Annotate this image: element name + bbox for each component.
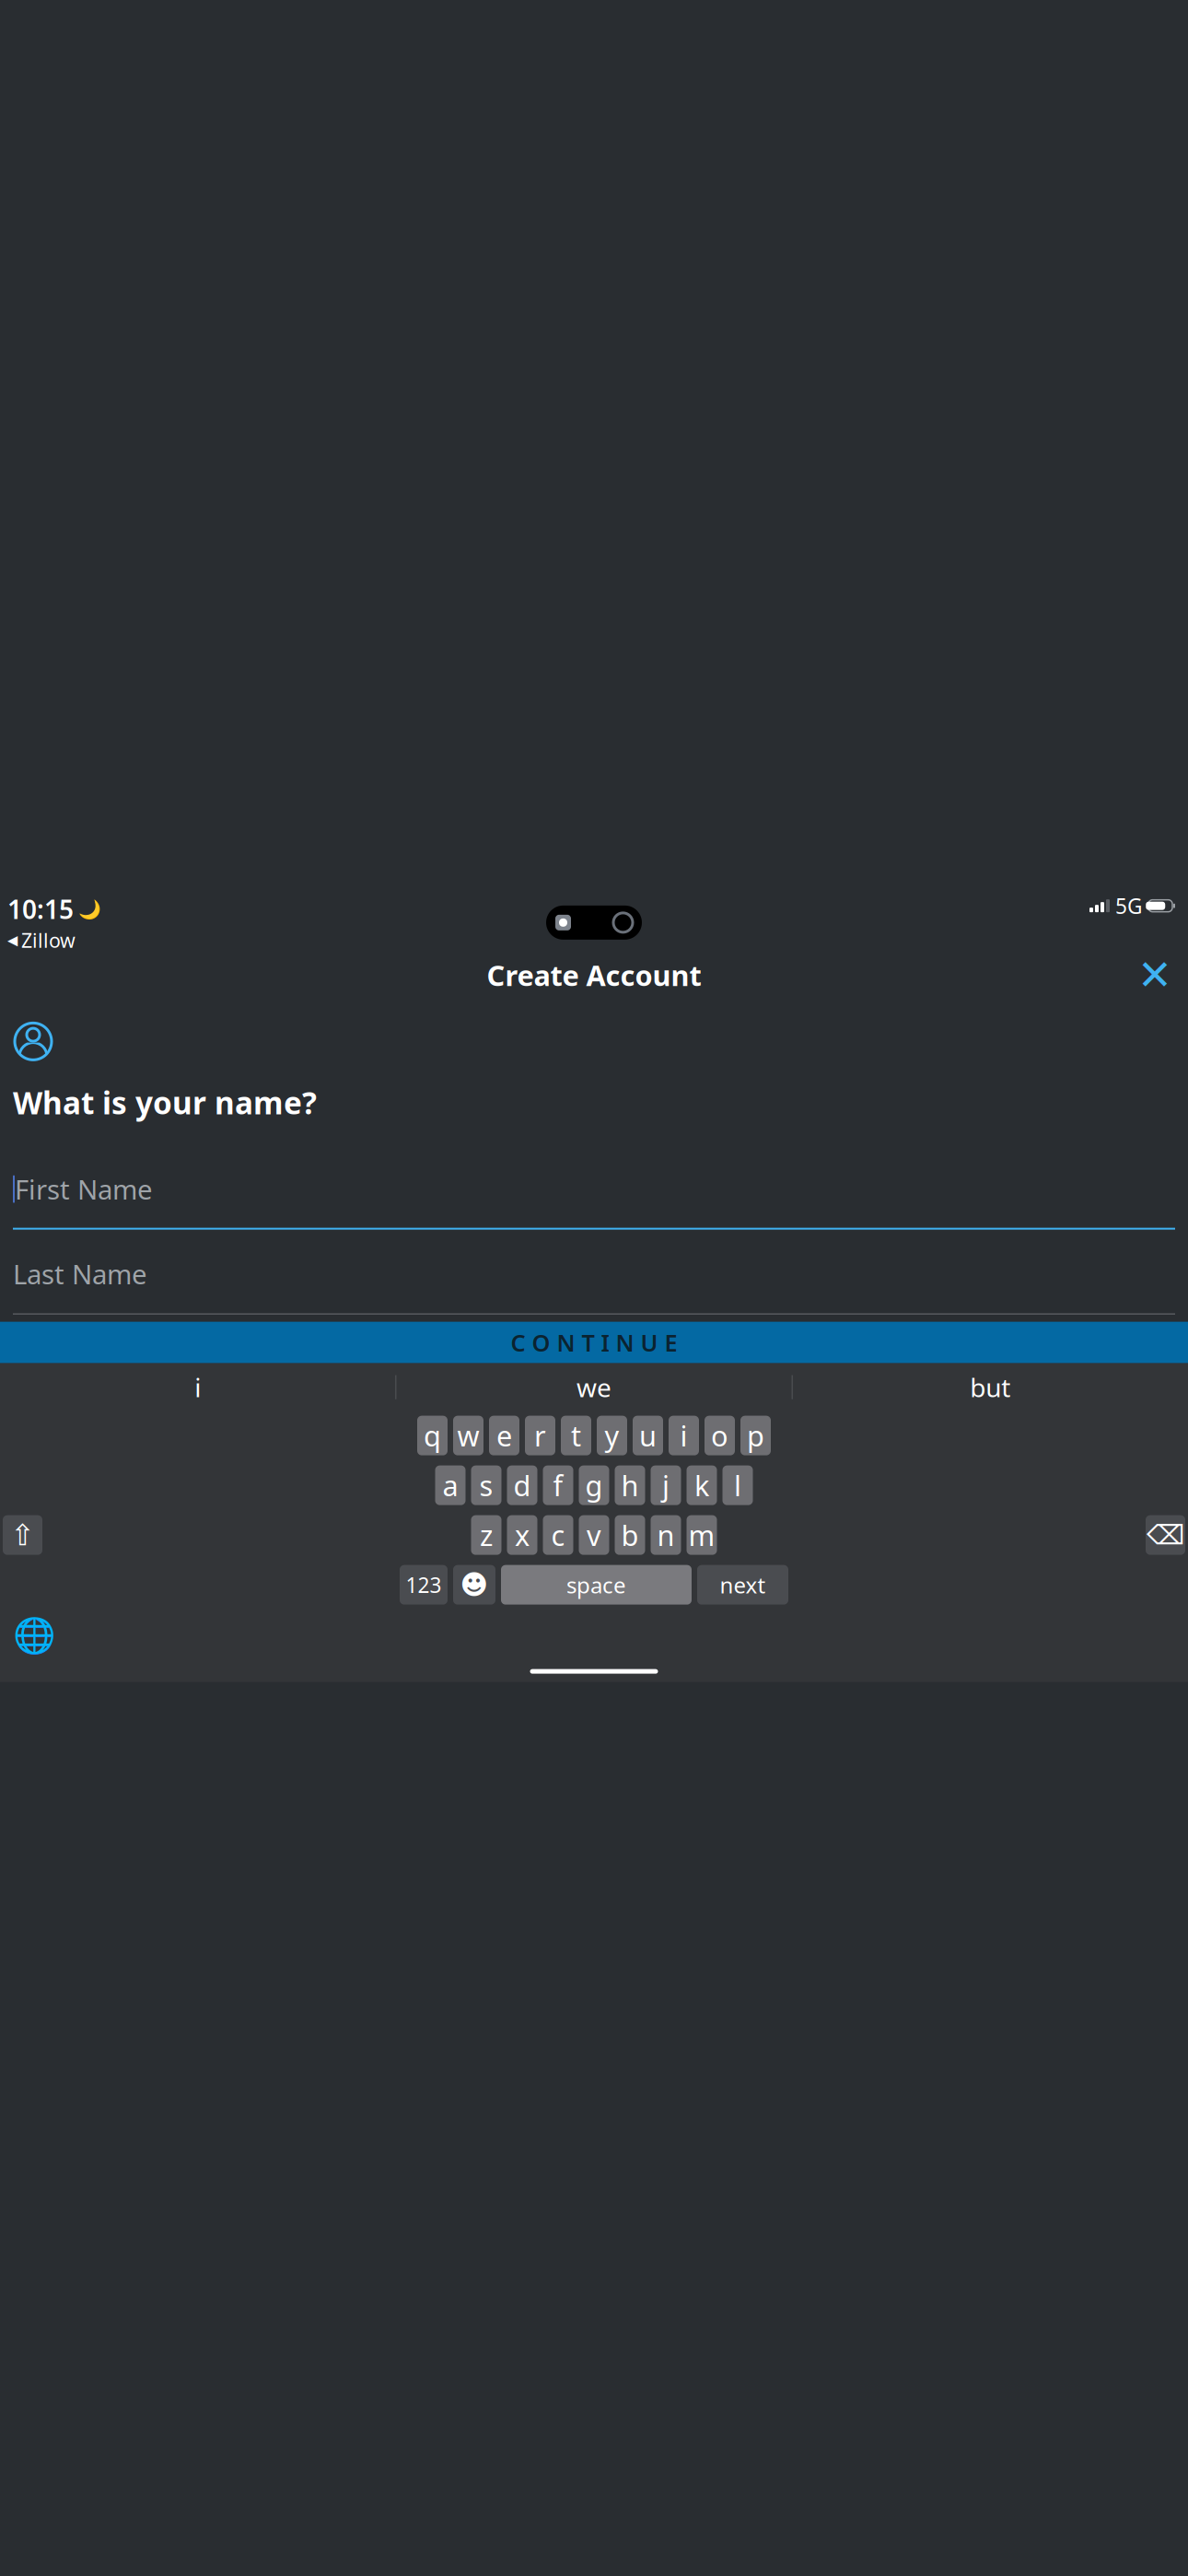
staticText: x [515,1516,530,1554]
button[interactable]: q [417,1416,448,1455]
button[interactable]: b [615,1515,645,1555]
button[interactable]: r [525,1416,555,1455]
button[interactable]: d [507,1465,537,1505]
button[interactable]: C O N T I N U E [0,1322,1188,1363]
button[interactable]: w [453,1416,483,1455]
staticText: z [480,1516,493,1554]
button[interactable]: p [740,1416,771,1455]
button[interactable]: Delete [1146,1515,1185,1555]
staticText: w [457,1417,479,1454]
staticText: 10:15 [7,892,74,926]
staticText: a [443,1467,458,1504]
staticText: n [657,1516,675,1554]
button[interactable]: 123 [400,1565,448,1605]
button[interactable]: c [543,1515,573,1555]
staticText: j [662,1467,670,1504]
button[interactable]: Emoji [453,1565,495,1605]
button[interactable]: f [543,1465,573,1505]
staticText: f [553,1467,563,1504]
staticText: l [734,1467,741,1504]
button[interactable]: s [471,1465,501,1505]
button[interactable]: First Name [13,1169,1175,1230]
staticText: y [605,1417,619,1454]
button[interactable]: next [697,1565,788,1605]
button[interactable]: h [615,1465,645,1505]
button[interactable]: x [507,1515,537,1555]
button[interactable]: y [597,1416,627,1455]
staticText: 5G [1115,892,1143,920]
button[interactable]: l [722,1465,753,1505]
staticText: but [970,1370,1011,1404]
staticText: What is your name? [13,1082,317,1123]
staticText: 🌐 [13,1616,55,1656]
button[interactable]: u [633,1416,663,1455]
staticText: s [479,1467,493,1504]
staticText: First Name [15,1171,153,1207]
button[interactable]: o [705,1416,735,1455]
staticText: ✕ [1137,951,1172,999]
staticText: e [496,1417,512,1454]
staticText: k [694,1467,709,1504]
staticText: C O N T I N U E [511,1327,677,1358]
staticText: i [680,1417,687,1454]
staticText: next [720,1570,766,1599]
button[interactable]: but [793,1363,1188,1411]
staticText: p [747,1417,764,1454]
button[interactable]: e [489,1416,519,1455]
button[interactable]: ◀ [7,927,76,953]
button[interactable]: v [579,1515,609,1555]
button[interactable]: a [435,1465,466,1505]
staticText: c [551,1516,565,1554]
staticText: space [566,1570,626,1599]
button[interactable]: Change keyboard [14,1616,54,1656]
button[interactable]: Last Name [13,1254,1175,1314]
button[interactable]: m [687,1515,717,1555]
button[interactable]: k [687,1465,717,1505]
staticText: u [639,1417,657,1454]
button[interactable]: Shift [3,1515,42,1555]
button[interactable]: i [0,1363,395,1411]
staticText: Create Account [487,956,701,994]
staticText: Last Name [13,1256,147,1292]
staticText: v [587,1516,601,1554]
staticText: 123 [406,1571,442,1599]
button[interactable]: j [651,1465,681,1505]
staticText: h [621,1467,639,1504]
staticText: g [585,1467,603,1504]
staticText: 🌙 [78,899,101,920]
button[interactable]: i [669,1416,699,1455]
staticText: we [577,1370,611,1404]
staticText: ⇧ [10,1518,35,1552]
staticText: Zillow [21,927,76,953]
staticText: b [621,1516,639,1554]
button[interactable]: Close [1135,955,1175,995]
staticText: m [688,1516,715,1554]
staticText: t [571,1417,581,1454]
staticText: d [513,1467,531,1504]
staticText: ⌫ [1147,1520,1184,1550]
staticText: o [711,1417,728,1454]
staticText: r [534,1417,546,1454]
staticText: q [424,1417,441,1454]
button[interactable]: z [471,1515,501,1555]
staticText: ◀ [7,932,17,948]
button[interactable]: g [579,1465,609,1505]
button[interactable]: space [501,1565,692,1605]
button[interactable]: t [561,1416,591,1455]
staticText: i [195,1370,201,1404]
button[interactable]: n [651,1515,681,1555]
button[interactable]: we [396,1363,792,1411]
staticText: ☻ [460,1569,489,1600]
